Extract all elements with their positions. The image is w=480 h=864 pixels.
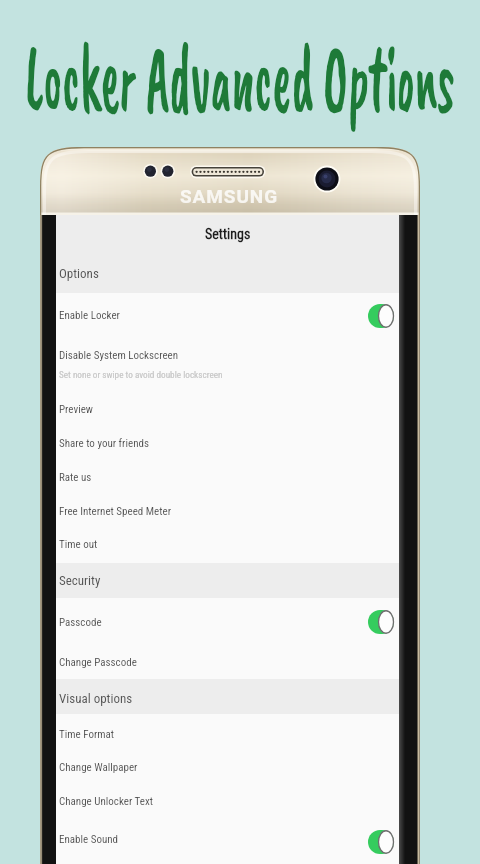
staticText: Change Unlocker Text xyxy=(59,795,153,808)
staticText: Enable Sound xyxy=(59,833,119,846)
button[interactable]: Preview xyxy=(56,393,399,427)
staticText: Rate us xyxy=(59,471,92,484)
button[interactable]: Change Unlocker Text xyxy=(56,785,399,819)
staticText: Options xyxy=(59,266,99,281)
staticText: Time Format xyxy=(59,728,115,741)
staticText: Change Wallpaper xyxy=(59,761,138,774)
button[interactable]: Time Format xyxy=(56,714,399,751)
staticText: Set none or swipe to avoid double locksc… xyxy=(59,369,223,380)
button[interactable]: Enable Sound xyxy=(56,819,399,864)
staticText: Security xyxy=(59,573,101,588)
button[interactable]: Disable System Lockscreen xyxy=(56,339,399,393)
other: Toggle Enable Sound xyxy=(368,830,394,854)
staticText: Passcode xyxy=(59,616,102,629)
button[interactable]: Change Passcode xyxy=(56,645,399,679)
staticText: Settings xyxy=(205,226,251,242)
staticText: Change Passcode xyxy=(59,656,137,669)
button[interactable]: Security xyxy=(56,563,399,598)
staticText: Visual options xyxy=(59,691,133,706)
staticText: Time out xyxy=(59,538,98,551)
staticText: Share to your friends xyxy=(59,437,149,450)
staticText: Free Internet Speed Meter xyxy=(59,505,171,518)
other: Toggle Enable Locker xyxy=(368,304,394,328)
button[interactable]: Share to your friends xyxy=(56,427,399,461)
button[interactable]: Free Internet Speed Meter xyxy=(56,495,399,529)
staticText: Enable Locker xyxy=(59,309,120,322)
staticText: Preview xyxy=(59,403,93,416)
other: Toggle Passcode xyxy=(368,610,394,634)
button[interactable]: Time out xyxy=(56,529,399,563)
staticText: SAMSUNG xyxy=(180,185,278,207)
staticText: Locker Advanced Options xyxy=(19,17,461,138)
staticText: Disable System Lockscreen xyxy=(59,349,179,362)
button[interactable]: Rate us xyxy=(56,461,399,495)
button[interactable]: Options xyxy=(56,259,399,293)
button[interactable]: Change Wallpaper xyxy=(56,751,399,785)
button[interactable]: Enable Locker xyxy=(56,293,399,339)
button[interactable]: Visual options xyxy=(56,679,399,714)
button[interactable]: Passcode xyxy=(56,598,399,645)
